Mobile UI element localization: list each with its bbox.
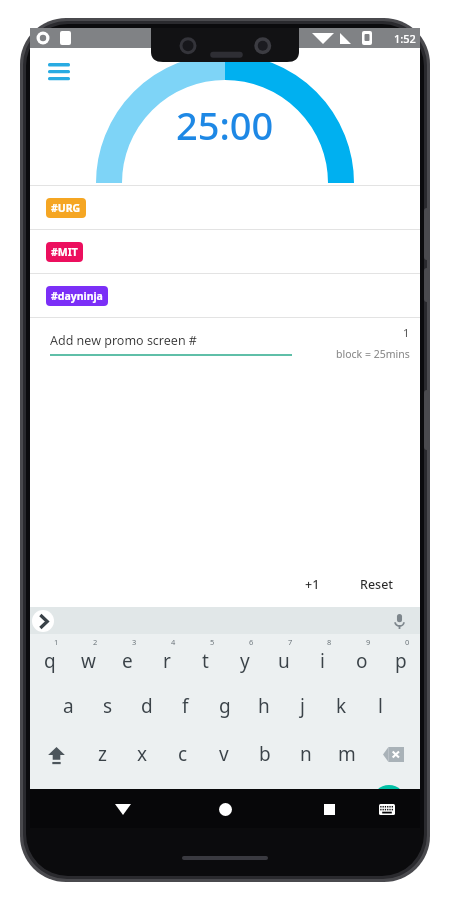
staticText: i (320, 648, 325, 674)
button[interactable]: 1 (30, 634, 69, 682)
staticText: 2 (93, 637, 98, 647)
button[interactable]: Menu (42, 54, 76, 88)
staticText: v (219, 741, 229, 767)
staticText: q (44, 648, 56, 674)
staticText: 6 (249, 637, 254, 647)
staticText: j (300, 693, 305, 719)
button[interactable]: 8 (303, 634, 342, 682)
button[interactable]: j (283, 682, 322, 730)
button[interactable]: +1 (293, 570, 332, 599)
button[interactable]: f (166, 682, 205, 730)
staticText: #dayninja (51, 289, 103, 303)
button[interactable]: 0 (381, 634, 420, 682)
staticText: y (240, 648, 250, 674)
button[interactable]: d (127, 682, 166, 730)
button[interactable]: v (203, 730, 244, 778)
staticText: e (122, 648, 133, 674)
button[interactable]: a (49, 682, 88, 730)
button[interactable]: s (88, 682, 127, 730)
staticText: d (141, 693, 153, 719)
button[interactable]: Reset (354, 570, 400, 599)
button[interactable]: 5 (186, 634, 225, 682)
button[interactable]: 3 (108, 634, 147, 682)
staticText: Add new promo screen # (50, 332, 197, 349)
button[interactable]: #URG (30, 186, 420, 229)
button[interactable]: b (244, 730, 285, 778)
button[interactable]: Recents (312, 792, 346, 826)
button[interactable]: g (205, 682, 244, 730)
staticText: 4 (171, 637, 176, 647)
staticText: z (98, 741, 107, 767)
staticText: w (81, 648, 96, 674)
staticText: 8 (327, 637, 332, 647)
staticText: 5 (210, 637, 215, 647)
staticText: t (202, 648, 209, 674)
staticText: 7 (288, 637, 293, 647)
button[interactable]: z (82, 730, 122, 778)
button[interactable]: Expand suggestions (32, 610, 54, 632)
staticText: #URG (51, 201, 81, 215)
staticText: r (163, 648, 171, 674)
staticText: 1 (54, 637, 59, 647)
staticText: . (336, 788, 341, 811)
button[interactable]: 7 (264, 634, 303, 682)
staticText: k (336, 693, 347, 719)
button[interactable]: Switch keyboard (372, 794, 402, 824)
staticText: n (300, 741, 312, 767)
staticText: 9 (366, 637, 371, 647)
button[interactable]: Space (164, 790, 320, 814)
staticText: c (178, 741, 188, 767)
button[interactable]: 6 (225, 634, 264, 682)
button[interactable]: ?123 (30, 778, 90, 826)
staticText: p (395, 648, 407, 674)
button[interactable]: #MIT (30, 230, 420, 273)
staticText: #MIT (51, 245, 78, 259)
staticText: , (106, 787, 111, 810)
button[interactable]: Back (106, 792, 140, 826)
button[interactable]: x (122, 730, 162, 778)
button[interactable]: Done (372, 785, 406, 819)
staticText: 1 (403, 325, 410, 340)
button[interactable]: #dayninja (30, 274, 420, 317)
staticText: 3 (132, 637, 137, 647)
button[interactable]: 4 (147, 634, 186, 682)
button[interactable]: Home (208, 792, 242, 826)
staticText: o (356, 648, 368, 674)
button[interactable]: h (244, 682, 283, 730)
button[interactable]: Add new promo screen # (50, 332, 310, 356)
staticText: x (137, 741, 148, 767)
button[interactable]: n (285, 730, 326, 778)
staticText: b (259, 741, 271, 767)
button[interactable]: Voice input (388, 610, 410, 632)
staticText: +1 (305, 576, 320, 593)
staticText: 0 (405, 637, 410, 647)
staticText: l (378, 693, 383, 719)
staticText: block = 25mins (336, 347, 410, 361)
staticText: f (182, 693, 189, 719)
button[interactable]: Backspace (367, 730, 420, 778)
staticText: 1:52 (394, 31, 416, 46)
staticText: s (103, 693, 113, 719)
button[interactable]: Emoji (127, 778, 164, 826)
staticText: h (258, 693, 270, 719)
button[interactable]: c (162, 730, 203, 778)
button[interactable]: l (361, 682, 400, 730)
button[interactable]: 9 (342, 634, 381, 682)
button[interactable]: m (326, 730, 367, 778)
staticText: u (278, 648, 290, 674)
button[interactable]: 2 (69, 634, 108, 682)
staticText: a (63, 693, 74, 719)
staticText: 25:00 (176, 99, 274, 151)
button[interactable]: , (90, 778, 127, 826)
button[interactable]: Shift (30, 730, 82, 778)
staticText: Reset (360, 576, 394, 593)
button[interactable]: . (320, 778, 357, 826)
button[interactable]: k (322, 682, 361, 730)
staticText: g (219, 693, 231, 719)
staticText: m (338, 741, 356, 767)
